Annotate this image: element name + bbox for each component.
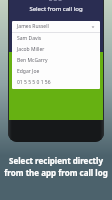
staticText: Select recipient directly <box>9 155 103 166</box>
staticText: Edgar Joe <box>17 68 40 75</box>
button[interactable]: Sam Davis <box>12 33 100 44</box>
button[interactable]: Edgar Joe <box>12 66 100 77</box>
button[interactable]: 01 5 5 5 0 1 56 <box>12 77 100 88</box>
button[interactable]: Jacob Miller <box>12 44 100 55</box>
button[interactable]: James Russell <box>12 21 100 32</box>
other: Expand <box>91 25 95 29</box>
staticText: Ben McGarry <box>17 57 48 64</box>
button[interactable]: Ben McGarry <box>12 55 100 66</box>
staticText: from the app from call log <box>4 167 108 178</box>
button[interactable]: Jane Smith <box>12 88 100 89</box>
staticText: 01 5 5 5 0 1 56 <box>17 79 51 86</box>
staticText: Select from call log <box>29 5 83 13</box>
staticText: Sam Davis <box>17 35 42 42</box>
staticText: James Russell <box>17 23 49 30</box>
staticText: Jacob Miller <box>17 46 45 53</box>
